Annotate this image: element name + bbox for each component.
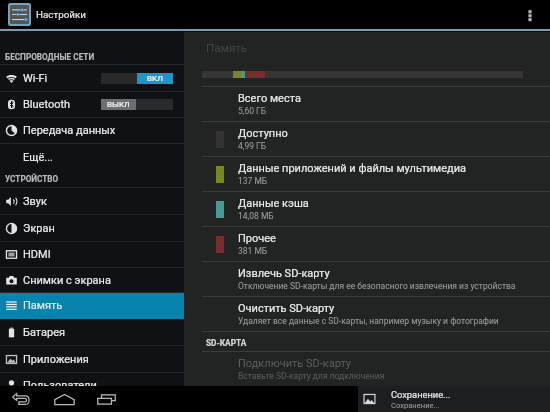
staticText: 137 МБ	[238, 176, 268, 186]
staticText: Bluetooth	[23, 98, 71, 111]
staticText: Сохранение...	[391, 389, 451, 400]
button[interactable]: Данные приложений и файлы мультимедиа	[184, 157, 550, 191]
button[interactable]: Прочее	[184, 227, 550, 261]
staticText: Звук	[23, 195, 47, 208]
staticText: Батарея	[23, 326, 66, 339]
button[interactable]: Back	[8, 386, 34, 412]
button[interactable]: Bluetooth	[0, 92, 184, 117]
button[interactable]: Сохранение...	[358, 386, 550, 412]
staticText: Прочее	[238, 232, 276, 245]
staticText: Настройки	[36, 9, 86, 20]
button[interactable]: Звук	[0, 188, 184, 214]
staticText: Удаляет все данные с SD-карты, например …	[238, 316, 499, 326]
button[interactable]: Home	[51, 386, 77, 412]
staticText: Экран	[23, 222, 55, 235]
staticText: Подключить SD-карту	[238, 357, 352, 370]
staticText: Память	[23, 299, 63, 312]
staticText: Очистить SD-карту	[238, 302, 335, 315]
button[interactable]: Данные кэша	[184, 192, 550, 226]
staticText: Доступно	[238, 127, 288, 140]
button[interactable]: HDMI	[0, 242, 184, 267]
button[interactable]: Извлечь SD-карту	[184, 262, 550, 296]
staticText: БЕСПРОВОДНЫЕ СЕТИ	[5, 52, 95, 62]
staticText: Приложения	[23, 353, 89, 366]
staticText: Отключение SD-карты для ее безопасного и…	[238, 281, 516, 291]
staticText: SD-КАРТА	[206, 338, 247, 348]
staticText: 4,99 ГБ	[238, 141, 267, 151]
button[interactable]: Очистить SD-карту	[184, 297, 550, 331]
staticText: Данные кэша	[238, 197, 309, 210]
button[interactable]: Ещё...	[0, 144, 184, 170]
button[interactable]: Wi-Fi	[0, 65, 184, 91]
button[interactable]: Передача данных	[0, 118, 184, 143]
button[interactable]: Recent apps	[93, 386, 119, 412]
staticText: Извлечь SD-карту	[238, 267, 330, 280]
button[interactable]: Экран	[0, 215, 184, 241]
button[interactable]: More options	[517, 2, 543, 28]
staticText: Данные приложений и файлы мультимедиа	[238, 162, 467, 175]
staticText: ВЫКЛ	[107, 100, 130, 109]
button[interactable]: Пользователи	[0, 373, 184, 398]
staticText: Пользователи	[23, 379, 97, 392]
staticText: Wi-Fi	[23, 72, 48, 85]
button[interactable]: Батарея	[0, 319, 184, 345]
staticText: 5,60 ГБ	[238, 106, 267, 116]
staticText: Ещё...	[23, 151, 53, 164]
button[interactable]: Доступно	[184, 122, 550, 156]
staticText: Сохранение...	[391, 401, 440, 410]
staticText: HDMI	[23, 248, 51, 261]
staticText: 14,08 МБ	[238, 211, 274, 221]
button[interactable]: Снимки с экрана	[0, 268, 184, 292]
staticText: УСТРОЙСТВО	[5, 174, 59, 184]
staticText: Снимки с экрана	[23, 274, 111, 287]
staticText: Всего места	[238, 92, 301, 105]
button[interactable]: Память	[0, 293, 184, 318]
staticText: 381 МБ	[238, 246, 268, 256]
staticText: Передача данных	[23, 124, 116, 137]
button[interactable]: Всего места	[184, 87, 550, 121]
button[interactable]: Приложения	[0, 346, 184, 372]
staticText: ВКЛ	[147, 74, 163, 83]
button[interactable]: Подключить SD-карту	[184, 352, 550, 386]
staticText: Память	[206, 41, 248, 54]
staticText: Вставьте SD-карту для подключения	[238, 371, 385, 381]
